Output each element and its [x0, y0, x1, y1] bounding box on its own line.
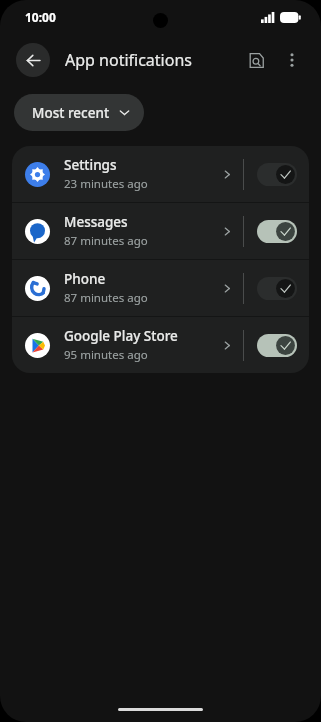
staticText: 10:00: [25, 9, 56, 25]
staticText: Messages: [64, 213, 128, 231]
button[interactable]: Messages: [12, 203, 309, 259]
button[interactable]: Most recent: [14, 94, 144, 131]
staticText: App notifications: [65, 49, 241, 71]
staticText: Most recent: [32, 104, 110, 122]
staticText: 23 minutes ago: [64, 176, 148, 192]
button[interactable]: Notifications off: [257, 163, 297, 186]
button[interactable]: Back: [16, 43, 50, 77]
button[interactable]: Notifications on: [257, 334, 297, 357]
staticText: 87 minutes ago: [64, 233, 148, 249]
staticText: Google Play Store: [64, 327, 178, 345]
staticText: Settings: [64, 156, 117, 174]
button[interactable]: Settings: [12, 146, 309, 202]
button[interactable]: Notifications off: [257, 277, 297, 300]
button[interactable]: Notifications on: [257, 220, 297, 243]
staticText: 87 minutes ago: [64, 290, 148, 306]
button[interactable]: Search in page: [241, 45, 271, 75]
button[interactable]: Phone: [12, 260, 309, 316]
button[interactable]: More options: [277, 45, 307, 75]
button[interactable]: Google Play Store: [12, 317, 309, 373]
staticText: 95 minutes ago: [64, 347, 148, 363]
staticText: Phone: [64, 270, 106, 288]
